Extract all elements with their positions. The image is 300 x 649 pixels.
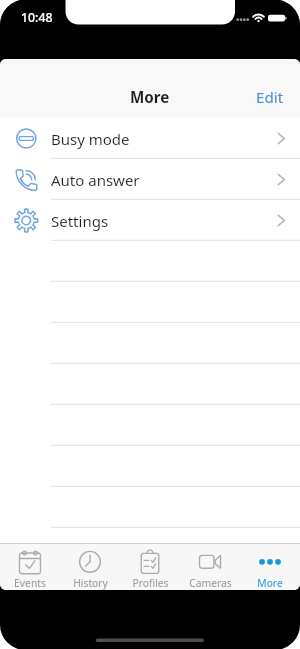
button[interactable]: Edit <box>240 79 300 116</box>
button[interactable]: Auto answer <box>0 159 300 200</box>
button[interactable]: History <box>60 543 120 590</box>
staticText: Busy mode <box>51 129 130 149</box>
staticText: More <box>257 576 283 590</box>
staticText: Settings <box>51 211 109 231</box>
button[interactable]: Events <box>0 543 60 590</box>
button[interactable]: More <box>240 543 300 590</box>
staticText: More <box>130 87 170 108</box>
button[interactable]: Cameras <box>180 543 240 590</box>
button[interactable]: Settings <box>0 200 300 241</box>
button[interactable]: Busy mode <box>0 118 300 159</box>
staticText: History <box>73 576 108 590</box>
staticText: Edit <box>256 87 284 108</box>
button[interactable]: Profiles <box>120 543 180 590</box>
staticText: Cameras <box>189 576 232 590</box>
staticText: Events <box>14 576 46 590</box>
staticText: Profiles <box>132 576 169 590</box>
staticText: 10:48 <box>21 9 53 26</box>
staticText: Auto answer <box>51 170 140 190</box>
